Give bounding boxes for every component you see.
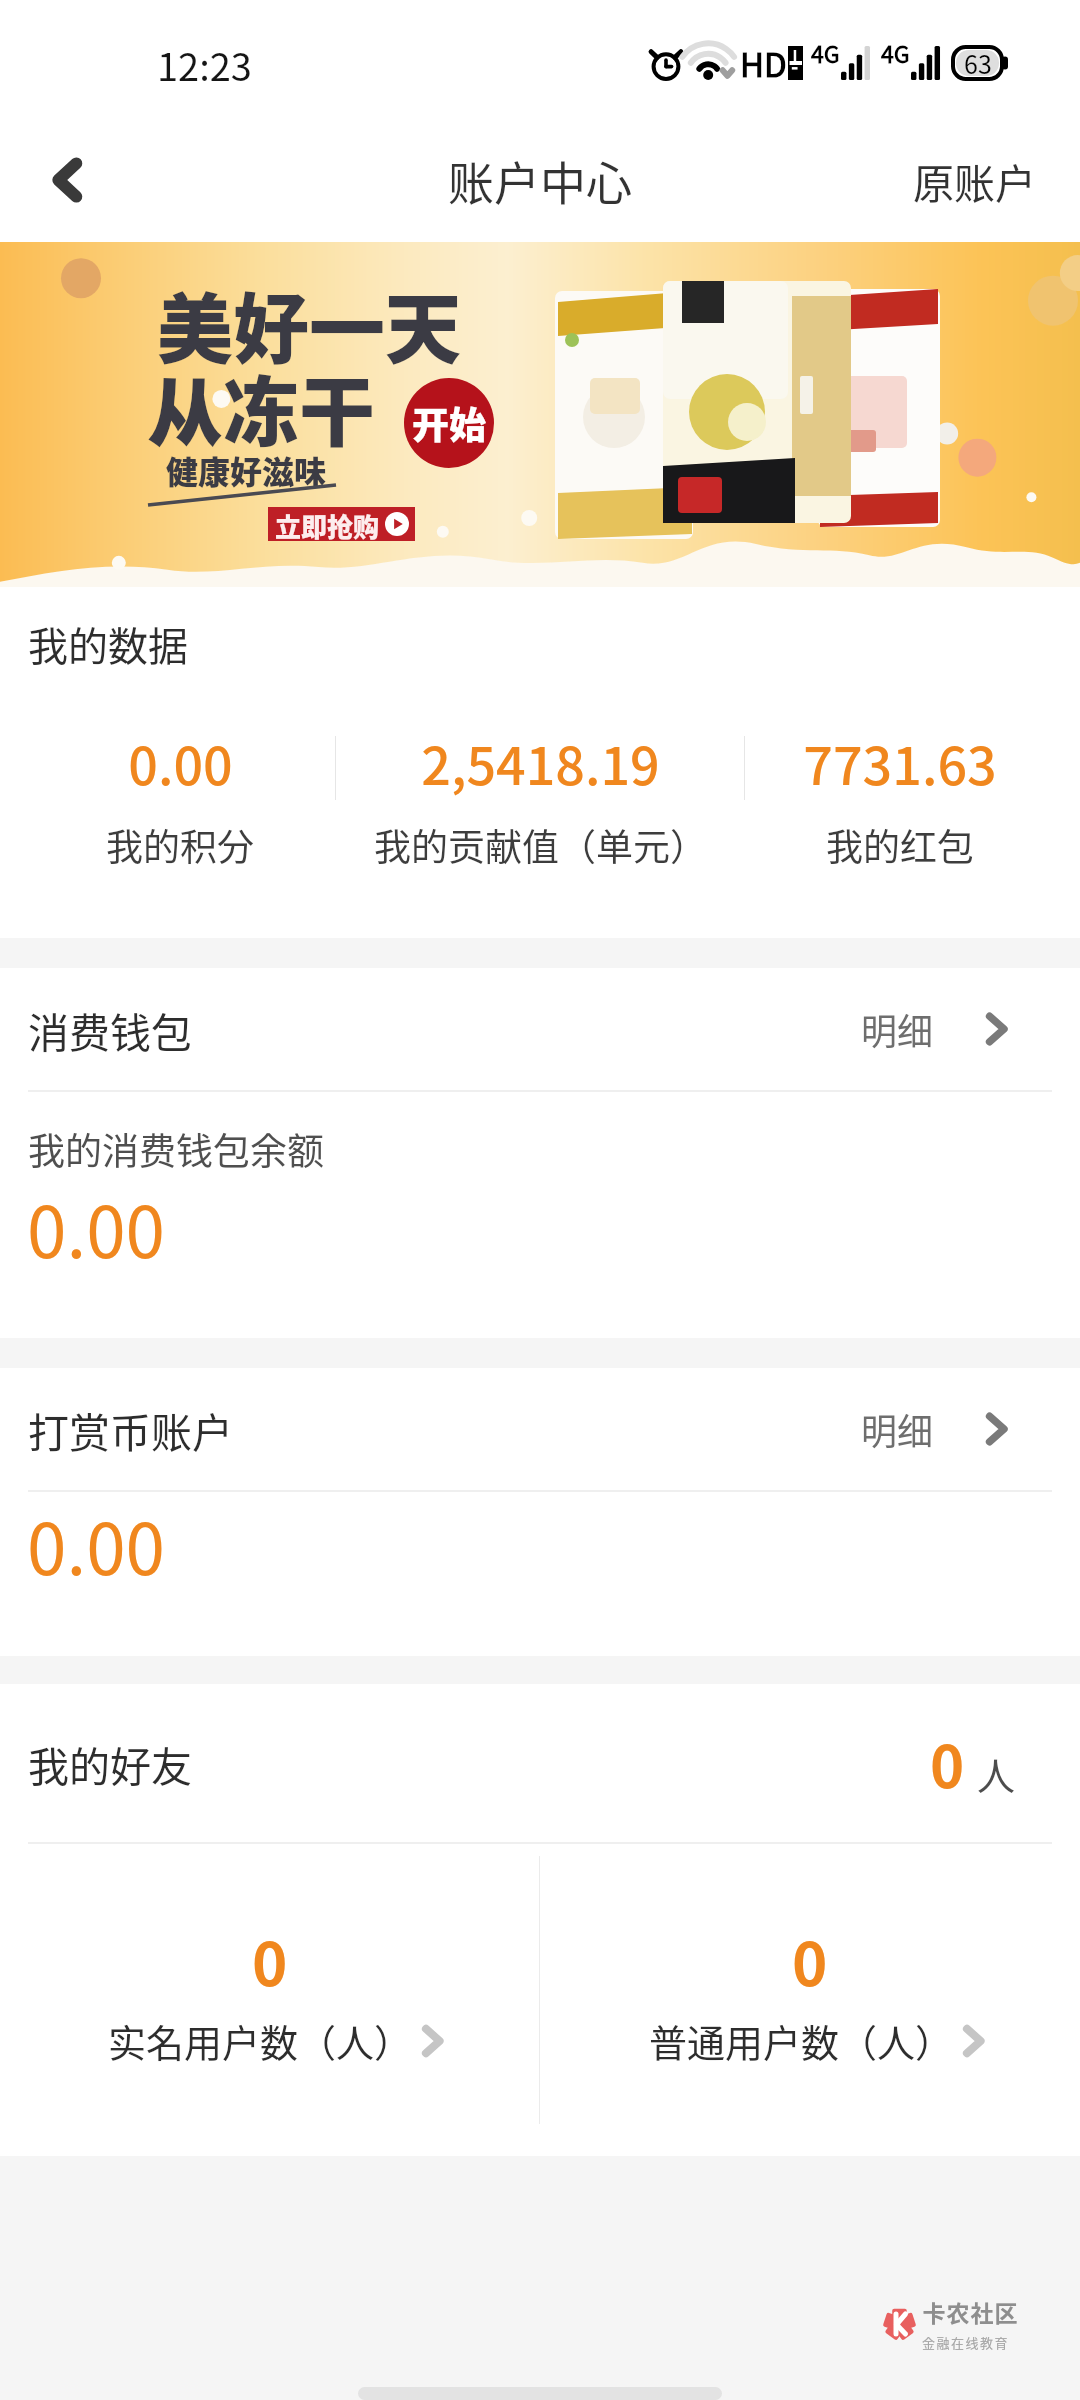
staticText: 明细 — [861, 1003, 934, 1055]
button[interactable]: 0 — [540, 1844, 1080, 2156]
button[interactable]: Back — [0, 118, 128, 242]
staticText: 金融在线教育 — [922, 2333, 1010, 2352]
staticText: 明细 — [861, 1403, 934, 1455]
staticText: 0.00 — [128, 725, 233, 800]
staticText: 实名用户数（人） — [108, 2013, 413, 2068]
button[interactable]: 打赏币账户 — [0, 1368, 1080, 1490]
staticText: 打赏币账户 — [28, 1400, 233, 1459]
staticText: 2,5418.19 — [421, 725, 660, 800]
staticText: 普通用户数（人） — [649, 2013, 954, 2068]
staticText: 12:23 — [157, 37, 252, 92]
staticText: 0 — [252, 1916, 288, 2003]
staticText: 消费钱包 — [28, 1000, 192, 1059]
staticText: 美好一天 — [157, 269, 461, 379]
staticText: HD — [740, 39, 787, 87]
staticText: 我的消费钱包余额 — [28, 1122, 324, 1176]
staticText: 我的贡献值（单元） — [374, 818, 707, 872]
staticText: 我的数据 — [28, 615, 188, 673]
staticText: 0 — [930, 1721, 965, 1805]
staticText: 7731.63 — [803, 725, 997, 800]
button[interactable]: 我的好友 — [0, 1684, 1080, 1842]
staticText: 立即抢购 — [275, 507, 380, 541]
staticText: 4G — [881, 36, 910, 69]
button[interactable]: 2,5418.19 — [360, 725, 720, 875]
button[interactable]: 消费钱包 — [0, 968, 1080, 1090]
staticText: 原账户 — [913, 151, 1036, 210]
staticText: 63 — [964, 45, 992, 81]
staticText: 人 — [977, 1746, 1016, 1801]
button[interactable]: 美好一天 — [0, 242, 1080, 587]
staticText: 账户中心 — [448, 147, 632, 214]
staticText: 我的红包 — [826, 818, 974, 872]
button[interactable]: 原账户 — [873, 118, 1080, 242]
button[interactable]: 0 — [0, 1844, 539, 2156]
staticText: 卡农社区 — [922, 2295, 1018, 2328]
staticText: 0.00 — [27, 1176, 165, 1279]
staticText: 我的积分 — [106, 818, 254, 872]
staticText: 0 — [792, 1916, 828, 2003]
staticText: 从冻干 — [147, 352, 375, 462]
button[interactable]: 0.00 — [0, 725, 360, 875]
staticText: 4G — [811, 36, 840, 69]
button[interactable]: 7731.63 — [720, 725, 1080, 875]
staticText: 开始 — [412, 396, 486, 450]
staticText: 0.00 — [27, 1493, 165, 1596]
staticText: 健康好滋味 — [166, 447, 327, 493]
staticText: 我的好友 — [28, 1734, 192, 1793]
